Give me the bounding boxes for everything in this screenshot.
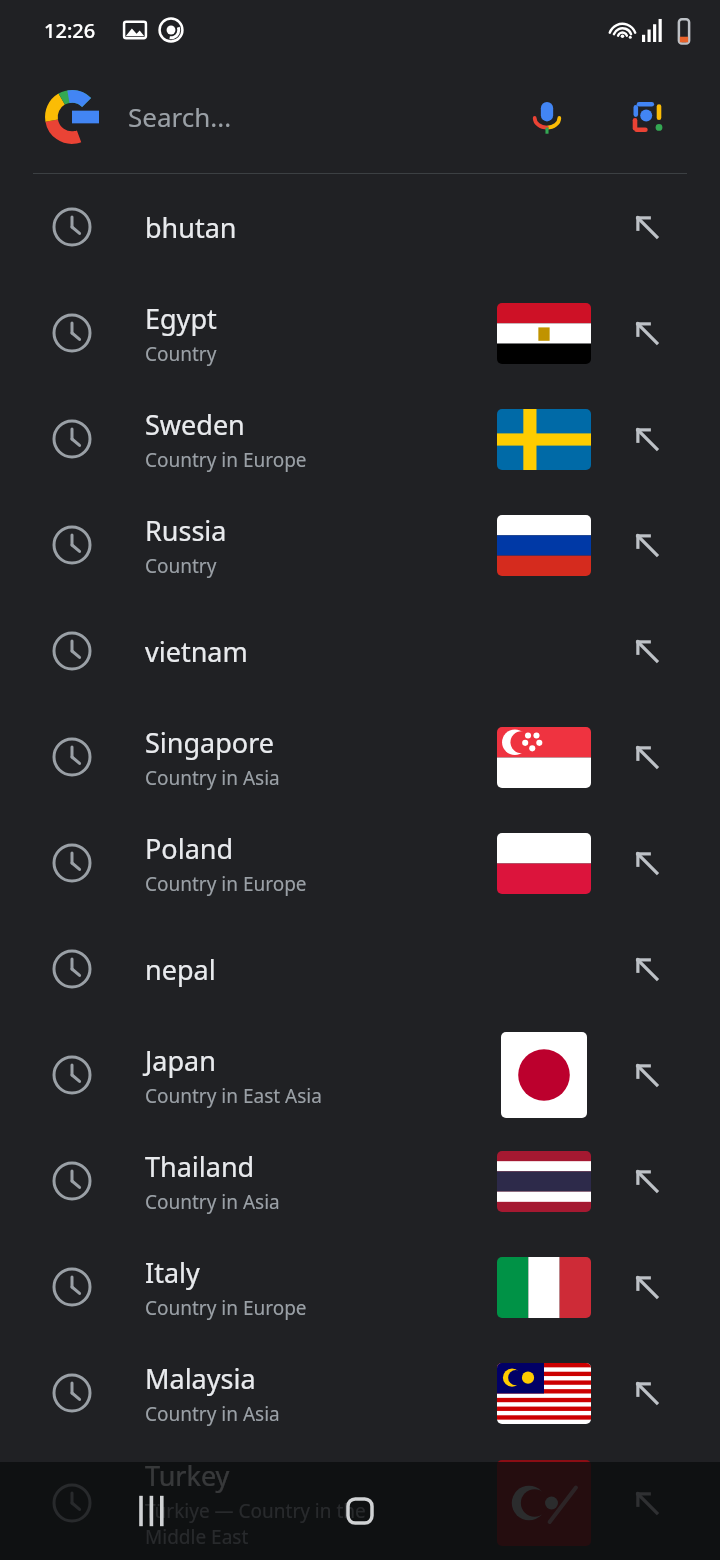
button[interactable]: Insert Singapore: [628, 738, 666, 776]
staticText: Country in Asia: [145, 1189, 280, 1215]
staticText: Türkiye — Country in the Middle East: [145, 1498, 366, 1550]
button[interactable]: Back: [548, 1491, 588, 1531]
button[interactable]: Home: [340, 1491, 380, 1531]
staticText: Singapore: [145, 724, 275, 761]
button[interactable]: Google: [0, 60, 720, 173]
other: Google: [45, 90, 99, 144]
staticText: Country in Asia: [145, 765, 280, 791]
staticText: Country in Europe: [145, 871, 307, 897]
button[interactable]: Insert nepal: [628, 950, 666, 988]
staticText: Poland: [145, 830, 234, 867]
button[interactable]: Italy: [0, 1234, 720, 1340]
staticText: Sweden: [145, 406, 245, 443]
button[interactable]: Russia: [0, 492, 720, 598]
button[interactable]: Voice search: [525, 95, 569, 139]
staticText: Country: [145, 553, 217, 579]
staticText: Egypt: [145, 300, 217, 337]
button[interactable]: Insert Malaysia: [628, 1374, 666, 1412]
staticText: Russia: [145, 512, 227, 549]
button[interactable]: Google Lens: [627, 97, 667, 137]
button[interactable]: Recent apps: [132, 1491, 172, 1531]
staticText: bhutan: [145, 209, 237, 246]
button[interactable]: Egypt: [0, 280, 720, 386]
staticText: 12:26: [44, 17, 96, 44]
staticText: nepal: [145, 951, 216, 988]
button[interactable]: Thailand: [0, 1128, 720, 1234]
button[interactable]: Insert Japan: [628, 1056, 666, 1094]
staticText: vietnam: [145, 633, 248, 670]
button[interactable]: Insert Russia: [628, 526, 666, 564]
button[interactable]: nepal: [0, 916, 720, 1022]
button[interactable]: Poland: [0, 810, 720, 916]
button[interactable]: Singapore: [0, 704, 720, 810]
staticText: Country in Europe: [145, 447, 307, 473]
button[interactable]: vietnam: [0, 598, 720, 704]
staticText: Malaysia: [145, 1360, 256, 1397]
button[interactable]: Insert Egypt: [628, 314, 666, 352]
staticText: Country in Asia: [145, 1401, 280, 1427]
staticText: Turkey: [145, 1457, 230, 1494]
button[interactable]: Insert Poland: [628, 844, 666, 882]
button[interactable]: Insert Italy: [628, 1268, 666, 1306]
staticText: Thailand: [145, 1148, 255, 1185]
button[interactable]: bhutan: [0, 174, 720, 280]
staticText: Search...: [128, 99, 525, 134]
staticText: Country in Europe: [145, 1295, 307, 1321]
staticText: Japan: [145, 1042, 216, 1079]
button[interactable]: Malaysia: [0, 1340, 720, 1446]
staticText: Country: [145, 341, 217, 367]
staticText: Country in East Asia: [145, 1083, 322, 1109]
button[interactable]: Japan: [0, 1022, 720, 1128]
button[interactable]: Insert vietnam: [628, 632, 666, 670]
button[interactable]: Insert Thailand: [628, 1162, 666, 1200]
button[interactable]: Sweden: [0, 386, 720, 492]
button[interactable]: Insert Sweden: [628, 420, 666, 458]
button[interactable]: Insert Turkey: [628, 1484, 666, 1522]
button[interactable]: Insert bhutan: [628, 208, 666, 246]
staticText: Italy: [145, 1254, 200, 1291]
button[interactable]: Turkey: [0, 1446, 720, 1560]
